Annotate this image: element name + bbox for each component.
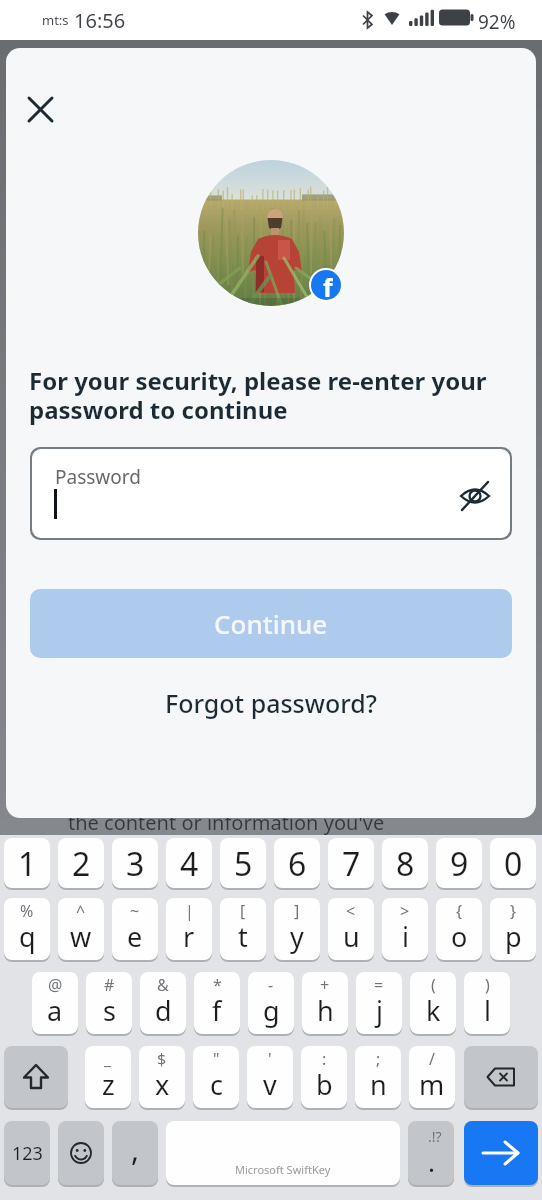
staticText: & xyxy=(157,974,169,996)
button[interactable]: { xyxy=(436,898,482,960)
button[interactable]: 3 xyxy=(112,838,158,888)
staticText: Password xyxy=(55,464,141,490)
staticText: ; xyxy=(376,1048,381,1070)
button[interactable]: 6 xyxy=(274,838,320,888)
staticText: ) xyxy=(485,974,490,996)
staticText: ' xyxy=(268,1048,272,1070)
button[interactable]: % xyxy=(4,898,50,960)
button[interactable]: | xyxy=(166,898,212,960)
button[interactable]: [ xyxy=(220,898,266,960)
staticText: 92% xyxy=(478,9,516,35)
button[interactable]: Password xyxy=(32,449,510,538)
button[interactable]: Continue xyxy=(30,589,512,658)
button[interactable]: # xyxy=(86,972,132,1034)
staticText: ( xyxy=(431,974,436,996)
staticText: n xyxy=(370,1066,387,1103)
button[interactable]: 2 xyxy=(58,838,104,888)
staticText: .!? xyxy=(428,1127,442,1146)
staticText: j xyxy=(376,992,383,1029)
button[interactable]: 5 xyxy=(220,838,266,888)
staticText: i xyxy=(402,918,409,955)
button[interactable]: & xyxy=(140,972,186,1034)
button[interactable] xyxy=(19,88,61,130)
staticText: 8 xyxy=(396,842,415,886)
staticText: z xyxy=(102,1066,115,1103)
button[interactable]: - xyxy=(248,972,294,1034)
button[interactable]: 8 xyxy=(382,838,428,888)
staticText: m xyxy=(419,1066,445,1103)
staticText: e xyxy=(127,918,143,955)
button[interactable]: _ xyxy=(85,1046,131,1108)
staticText: mt:s xyxy=(42,11,69,29)
button[interactable]: 0 xyxy=(490,838,536,888)
button[interactable]: Forgot password? xyxy=(6,678,536,728)
button[interactable] xyxy=(58,1121,104,1185)
button[interactable]: 7 xyxy=(328,838,374,888)
staticText: the content or information you've xyxy=(68,809,385,836)
staticText: % xyxy=(20,900,34,922)
staticText: 6 xyxy=(288,842,307,886)
button[interactable]: 9 xyxy=(436,838,482,888)
staticText: } xyxy=(510,900,517,922)
staticText: { xyxy=(456,900,463,922)
staticText: = xyxy=(374,974,384,996)
staticText: q xyxy=(19,918,36,955)
button[interactable]: ( xyxy=(410,972,456,1034)
button[interactable]: 123 xyxy=(4,1121,50,1185)
staticText: u xyxy=(343,918,360,955)
staticText: g xyxy=(263,992,280,1029)
staticText: f xyxy=(212,992,222,1029)
button[interactable] xyxy=(464,1121,538,1185)
button[interactable]: $ xyxy=(139,1046,185,1108)
staticText: For your security, please re-enter your … xyxy=(29,364,487,426)
staticText: a xyxy=(47,992,63,1029)
button[interactable]: ' xyxy=(247,1046,293,1108)
staticText: k xyxy=(426,992,441,1029)
staticText: + xyxy=(320,974,330,996)
staticText: * xyxy=(213,974,222,996)
staticText: b xyxy=(316,1066,333,1103)
button[interactable]: ] xyxy=(274,898,320,960)
button[interactable]: = xyxy=(356,972,402,1034)
button[interactable]: ^ xyxy=(58,898,104,960)
staticText: _ xyxy=(104,1048,112,1070)
staticText: v xyxy=(263,1066,277,1103)
button[interactable]: ~ xyxy=(112,898,158,960)
button[interactable]: 1 xyxy=(4,838,50,888)
staticText: y xyxy=(290,918,304,955)
staticText: 7 xyxy=(342,842,361,886)
button[interactable] xyxy=(4,1046,68,1108)
staticText: t xyxy=(238,918,248,955)
staticText: 3 xyxy=(126,842,145,886)
staticText: r xyxy=(183,918,195,955)
staticText: # xyxy=(104,974,115,996)
button[interactable]: .!? xyxy=(408,1121,454,1185)
staticText: 16:56 xyxy=(74,7,126,34)
button[interactable] xyxy=(464,1046,538,1108)
staticText: / xyxy=(429,1048,435,1070)
staticText: ^ xyxy=(76,900,86,922)
staticText: 0 xyxy=(504,842,523,886)
staticText: d xyxy=(155,992,172,1029)
button[interactable]: } xyxy=(490,898,536,960)
button[interactable]: ; xyxy=(355,1046,401,1108)
staticText: $ xyxy=(157,1048,167,1070)
button[interactable]: ) xyxy=(464,972,510,1034)
button[interactable]: Microsoft SwiftKey xyxy=(166,1121,400,1185)
staticText: : xyxy=(322,1048,327,1070)
button[interactable]: + xyxy=(302,972,348,1034)
staticText: ] xyxy=(294,900,300,922)
staticText: 2 xyxy=(72,842,91,886)
button[interactable]: @ xyxy=(32,972,78,1034)
button[interactable]: : xyxy=(301,1046,347,1108)
button[interactable]: > xyxy=(382,898,428,960)
button[interactable]: < xyxy=(328,898,374,960)
button[interactable]: * xyxy=(194,972,240,1034)
staticText: Continue xyxy=(214,606,328,641)
button[interactable]: " xyxy=(193,1046,239,1108)
button[interactable]: / xyxy=(409,1046,455,1108)
button[interactable]: , xyxy=(112,1121,158,1185)
staticText: 4 xyxy=(180,842,199,886)
button[interactable]: 4 xyxy=(166,838,212,888)
staticText: 1 xyxy=(18,842,37,886)
